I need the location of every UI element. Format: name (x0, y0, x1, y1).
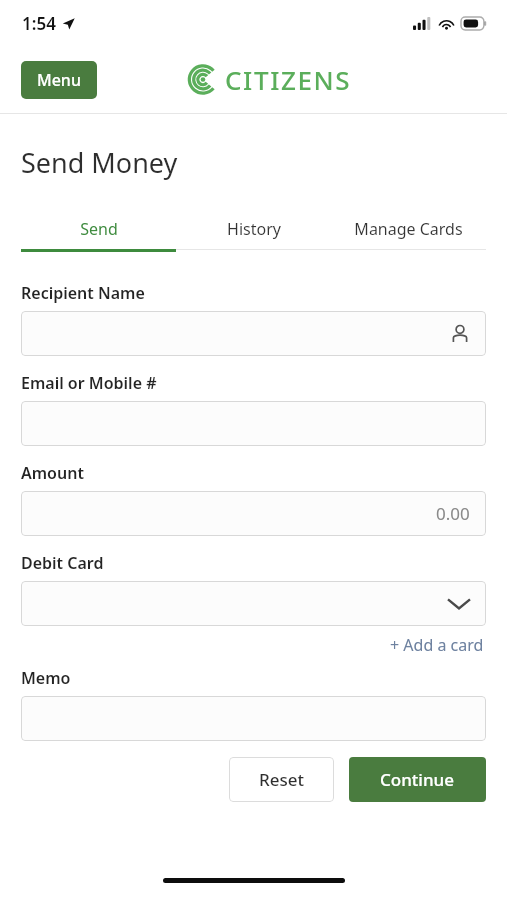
button[interactable]: Reset (229, 757, 334, 802)
staticText: Debit Card (21, 552, 104, 574)
button[interactable]: Send (21, 209, 176, 249)
button[interactable]: Citizens home (185, 62, 352, 97)
staticText: Amount (21, 462, 84, 484)
button[interactable]: 0.00 (21, 491, 486, 536)
staticText: CITIZENS (225, 62, 352, 97)
button[interactable]: Select debit card (21, 581, 486, 626)
staticText: Continue (380, 768, 455, 791)
button[interactable]: Menu (21, 61, 97, 99)
button[interactable]: + Add a card (388, 632, 486, 658)
staticText: 1:54 (22, 12, 56, 35)
button[interactable]: Manage Cards (331, 209, 486, 249)
staticText: + Add a card (390, 634, 484, 656)
button[interactable]: Continue (349, 757, 486, 802)
staticText: Recipient Name (21, 282, 145, 304)
button[interactable] (21, 696, 486, 741)
button[interactable]: History (176, 209, 331, 249)
button[interactable] (21, 311, 486, 356)
staticText: Menu (37, 69, 81, 91)
staticText: Memo (21, 667, 71, 689)
button[interactable] (21, 401, 486, 446)
staticText: Email or Mobile # (21, 372, 157, 394)
staticText: Manage Cards (354, 218, 463, 240)
staticText: History (227, 218, 281, 240)
staticText: Send Money (21, 144, 178, 181)
staticText: Send (80, 218, 118, 240)
staticText: 0.00 (436, 502, 470, 525)
staticText: Reset (259, 768, 305, 791)
